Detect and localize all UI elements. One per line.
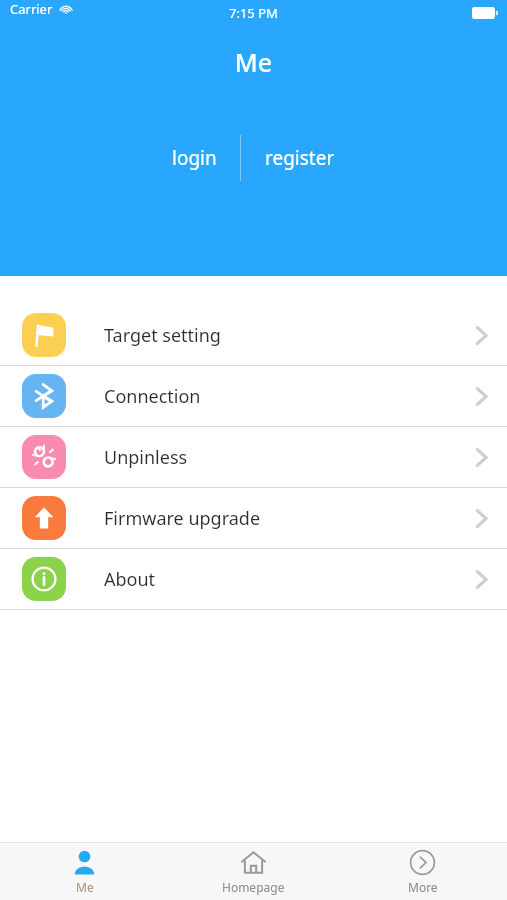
staticText: Homepage (222, 879, 285, 895)
staticText: login (172, 145, 217, 171)
staticText: register (265, 145, 335, 171)
staticText: About (104, 567, 156, 592)
staticText: Unpinless (104, 445, 188, 470)
staticText: 7:15 PM (229, 4, 278, 22)
staticText: Carrier (10, 0, 53, 18)
staticText: Firmware upgrade (104, 506, 261, 531)
staticText: Connection (104, 384, 201, 409)
staticText: More (408, 879, 438, 895)
button[interactable]: Firmware upgrade (0, 488, 507, 548)
button[interactable]: Unpinless (0, 427, 507, 487)
button[interactable]: login (148, 132, 240, 184)
button[interactable]: Homepage (169, 843, 338, 900)
button[interactable]: Target setting (0, 305, 507, 365)
staticText: Target setting (104, 323, 221, 348)
button[interactable]: More (338, 843, 507, 900)
button[interactable]: About (0, 549, 507, 609)
button[interactable]: register (241, 132, 359, 184)
button[interactable]: Connection (0, 366, 507, 426)
staticText: Me (0, 45, 507, 79)
staticText: Me (76, 879, 94, 895)
button[interactable]: Me (0, 843, 169, 900)
